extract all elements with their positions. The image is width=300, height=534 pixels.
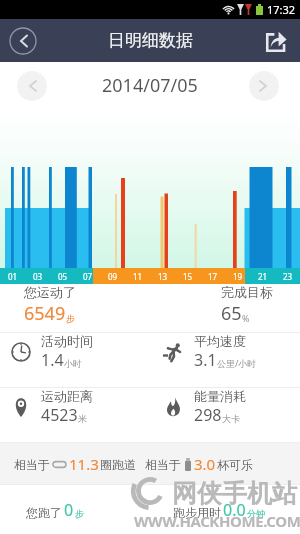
staticText: 6549 bbox=[24, 301, 66, 326]
staticText: 活动时间 bbox=[41, 333, 93, 349]
button[interactable]: 运动距离 bbox=[0, 388, 153, 426]
staticText: 公里/小时 bbox=[217, 357, 257, 369]
button[interactable]: Next day bbox=[249, 71, 279, 101]
staticText: 您跑了 bbox=[26, 505, 62, 520]
button[interactable]: 相当于 bbox=[14, 454, 136, 474]
staticText: 您运动了 bbox=[24, 284, 76, 300]
staticText: 17 bbox=[208, 271, 218, 282]
button[interactable]: 跑步用时 bbox=[173, 499, 265, 521]
staticText: 0 bbox=[64, 499, 74, 521]
staticText: 01 bbox=[8, 271, 18, 282]
button[interactable]: Previous day bbox=[17, 71, 47, 101]
staticText: 0.0 bbox=[223, 499, 246, 521]
staticText: 15 bbox=[183, 271, 193, 282]
staticText: 4523 bbox=[41, 404, 78, 426]
staticText: 05 bbox=[58, 271, 68, 282]
staticText: 小时 bbox=[64, 358, 82, 369]
button[interactable]: 活动时间 bbox=[0, 333, 153, 371]
staticText: 17:32 bbox=[267, 2, 296, 17]
staticText: 2014/07/05 bbox=[102, 73, 198, 98]
staticText: 圈跑道 bbox=[100, 457, 136, 472]
staticText: 21 bbox=[258, 271, 268, 282]
staticText: 步 bbox=[75, 508, 84, 519]
button[interactable]: Back bbox=[6, 24, 40, 58]
staticText: 11.3 bbox=[69, 454, 99, 474]
staticText: 跑步用时 bbox=[173, 505, 221, 520]
staticText: 19 bbox=[233, 271, 243, 282]
staticText: 步 bbox=[66, 313, 75, 324]
staticText: 大卡 bbox=[222, 413, 240, 424]
staticText: 日明细数据 bbox=[108, 30, 193, 51]
button[interactable]: 能量消耗 bbox=[153, 388, 300, 426]
staticText: 平均速度 bbox=[194, 333, 246, 349]
staticText: 能量消耗 bbox=[194, 388, 246, 404]
staticText: % bbox=[242, 312, 250, 324]
staticText: 03 bbox=[33, 271, 43, 282]
staticText: 完成目标 bbox=[221, 284, 273, 300]
staticText: 1.4 bbox=[41, 349, 64, 371]
staticText: 23 bbox=[283, 271, 293, 282]
staticText: 相当于 bbox=[145, 457, 181, 472]
staticText: 分钟 bbox=[247, 508, 265, 519]
staticText: 网侠手机站 bbox=[172, 478, 297, 509]
staticText: 3.0 bbox=[194, 454, 216, 474]
staticText: WWW.HACKHOME.COM bbox=[134, 511, 300, 531]
staticText: 米 bbox=[78, 413, 87, 424]
staticText: 09 bbox=[108, 271, 118, 282]
button[interactable]: 您跑了 bbox=[26, 499, 84, 521]
staticText: 07 bbox=[83, 271, 93, 282]
staticText: 11 bbox=[133, 271, 143, 282]
staticText: 杯可乐 bbox=[217, 457, 253, 472]
staticText: 298 bbox=[194, 404, 222, 426]
button[interactable]: 平均速度 bbox=[153, 333, 300, 371]
other: Logo bbox=[133, 474, 167, 508]
staticText: 13 bbox=[158, 271, 168, 282]
button[interactable]: 相当于 bbox=[145, 454, 253, 474]
button[interactable]: Share bbox=[260, 25, 292, 57]
staticText: 运动距离 bbox=[41, 388, 93, 404]
staticText: 65 bbox=[221, 301, 242, 326]
staticText: 相当于 bbox=[14, 457, 50, 472]
staticText: 3.1 bbox=[194, 349, 217, 371]
